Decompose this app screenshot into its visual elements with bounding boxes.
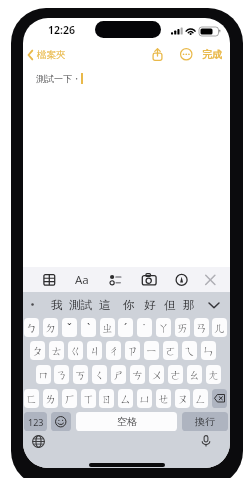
button[interactable]: ㄔ (106, 341, 121, 360)
button[interactable]: ㄍ (68, 341, 83, 360)
button[interactable]: ㄢ (194, 318, 209, 337)
button[interactable]: Markup (173, 270, 191, 289)
button[interactable]: 那 (183, 293, 195, 316)
button[interactable]: 但 (164, 293, 176, 316)
staticText: ㄓ (102, 321, 114, 335)
button[interactable]: ㄨ (149, 365, 164, 384)
button[interactable]: ㄕ (111, 365, 126, 384)
button[interactable]: ㄞ (175, 318, 190, 337)
button[interactable]: Emoji (51, 412, 71, 431)
staticText: ㄔ (108, 344, 120, 358)
button[interactable]: ㄒ (81, 389, 96, 408)
button[interactable]: ㄊ (49, 341, 64, 360)
button[interactable]: ㄅ (24, 318, 39, 337)
button[interactable]: ㄤ (206, 365, 221, 384)
staticText: ㄇ (38, 368, 50, 382)
staticText: ㄨ (151, 368, 163, 382)
staticText: ㄉ (45, 321, 57, 335)
button[interactable]: ㄑ (92, 365, 107, 384)
staticText: ㄅ (26, 321, 38, 335)
button[interactable]: ㄜ (168, 365, 183, 384)
button[interactable]: ㄓ (100, 318, 115, 337)
staticText: 但 (164, 298, 176, 312)
button[interactable]: Table (41, 270, 59, 289)
button[interactable]: 你 (123, 293, 135, 316)
button[interactable]: ˊ (118, 318, 133, 337)
button[interactable]: ㄇ (36, 365, 51, 384)
button[interactable]: Expand candidates (207, 298, 221, 312)
staticText: 空格 (117, 415, 137, 428)
button[interactable]: 我 (51, 293, 63, 316)
button[interactable]: ㄖ (99, 389, 114, 408)
button[interactable]: ㄈ (24, 389, 39, 408)
button[interactable]: ㄗ (125, 341, 140, 360)
button[interactable]: ㄌ (43, 389, 58, 408)
staticText: ㄏ (64, 392, 76, 406)
button[interactable]: 測試 (69, 293, 92, 316)
staticText: ㄢ (196, 321, 208, 335)
button[interactable]: ˇ (62, 318, 77, 337)
staticText: ˙ (143, 320, 146, 336)
staticText: ㄠ (189, 368, 201, 382)
button[interactable]: 123 (24, 412, 47, 431)
button[interactable]: ㄆ (30, 341, 45, 360)
button[interactable]: 好 (144, 293, 156, 316)
button[interactable]: 完成 (202, 47, 222, 62)
staticText: 我 (51, 298, 63, 312)
staticText: ㄟ (184, 344, 196, 358)
button[interactable]: ˙ (137, 318, 152, 337)
button[interactable]: ㄎ (73, 365, 88, 384)
staticText: ㄥ (195, 392, 207, 406)
button[interactable]: Camera (139, 270, 157, 289)
staticText: ㄧ (146, 344, 158, 358)
button[interactable]: ㄘ (130, 365, 145, 384)
staticText: ㄚ (158, 321, 170, 335)
button[interactable]: ㄩ (137, 389, 152, 408)
button[interactable]: More (179, 47, 193, 61)
button[interactable]: Checklist (105, 270, 123, 289)
button[interactable]: ㄠ (187, 365, 202, 384)
button[interactable]: 換行 (182, 412, 228, 431)
button[interactable]: ㄛ (163, 341, 178, 360)
staticText: ㄍ (70, 344, 82, 358)
staticText: ㄝ (158, 392, 170, 406)
button[interactable]: Backspace (212, 389, 227, 408)
button[interactable]: ㄏ (62, 389, 77, 408)
staticText: ㄗ (127, 344, 139, 358)
staticText: ㄤ (208, 368, 220, 382)
button[interactable]: Format text (72, 270, 90, 289)
staticText: ˋ (87, 320, 91, 336)
staticText: 這 (99, 298, 111, 312)
button[interactable]: ㄧ (144, 341, 159, 360)
staticText: ㄦ (214, 321, 226, 335)
button[interactable]: Change keyboard (31, 434, 46, 449)
button[interactable]: ㄥ (193, 389, 208, 408)
button[interactable]: ˋ (81, 318, 96, 337)
button[interactable]: 這 (99, 293, 111, 316)
staticText: Aa (75, 272, 89, 288)
staticText: 123 (28, 416, 44, 428)
button[interactable]: ㄣ (201, 341, 216, 360)
button[interactable]: 檔案夾 (26, 47, 66, 62)
button[interactable]: 空格 (76, 412, 177, 431)
staticText: 換行 (195, 415, 215, 428)
staticText: ㄕ (113, 368, 125, 382)
staticText: ㄈ (26, 392, 38, 406)
button[interactable]: ㄡ (175, 389, 190, 408)
button[interactable]: ㄦ (212, 318, 227, 337)
button[interactable]: Close (202, 270, 220, 289)
staticText: 好 (144, 298, 156, 312)
button[interactable]: ㄚ (156, 318, 171, 337)
staticText: ㄒ (83, 392, 95, 406)
button[interactable]: ㄉ (43, 318, 58, 337)
button[interactable]: ㄝ (156, 389, 171, 408)
staticText: ˇ (67, 320, 72, 336)
button[interactable]: ㄐ (87, 341, 102, 360)
button[interactable]: ㄋ (54, 365, 69, 384)
button[interactable]: Dictation (199, 434, 213, 448)
button[interactable]: ㄟ (182, 341, 197, 360)
button[interactable]: Share (150, 47, 165, 62)
staticText: ㄘ (132, 368, 144, 382)
staticText: ㄞ (177, 321, 189, 335)
button[interactable]: ㄙ (118, 389, 133, 408)
